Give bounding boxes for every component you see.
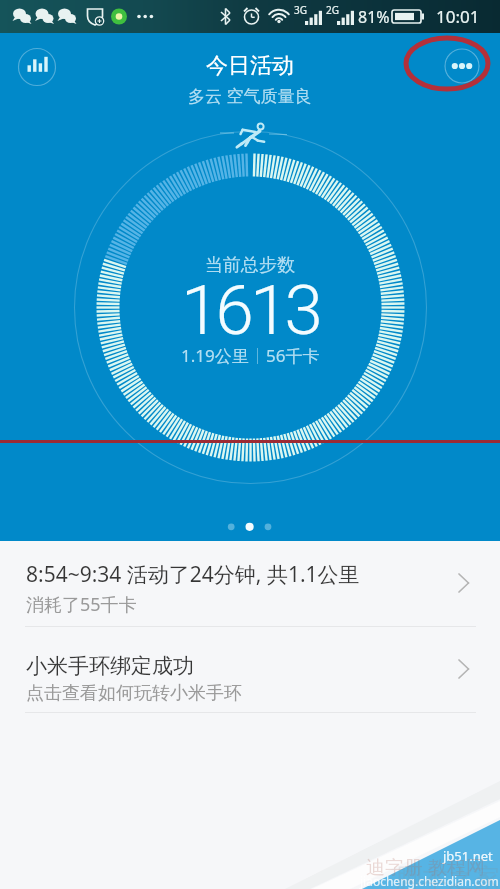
staticText: 8:54~9:34 活动了24分钟, 共1.1公里	[26, 560, 360, 589]
staticText: 2G	[326, 3, 339, 17]
staticText: 今日活动	[206, 52, 294, 80]
staticText: 当前总步数	[205, 254, 295, 277]
staticText: 小米手环绑定成功	[26, 653, 194, 679]
staticText: 10:01	[436, 5, 480, 28]
staticText: 脚本之家	[396, 862, 500, 889]
staticText: 1.19公里	[181, 344, 249, 367]
button[interactable]: Statistics	[17, 47, 57, 87]
button[interactable]: 小米手环绑定成功	[0, 627, 500, 712]
staticText: 1613	[181, 270, 319, 351]
staticText: 56千卡	[266, 344, 320, 367]
staticText: 迪字册 教程网	[366, 854, 485, 880]
staticText: jiaocheng.chezidian.com	[360, 873, 499, 889]
staticText: 多云 空气质量良	[188, 84, 312, 107]
staticText: 消耗了55千卡	[26, 592, 137, 617]
button[interactable]: More options	[444, 48, 480, 84]
staticText: 81%	[358, 6, 390, 28]
staticText: jb51.net	[443, 847, 493, 865]
button[interactable]: 8:54~9:34 活动了24分钟, 共1.1公里	[0, 541, 500, 626]
staticText: 点击查看如何玩转小米手环	[26, 682, 242, 705]
staticText: 3G	[294, 3, 307, 17]
